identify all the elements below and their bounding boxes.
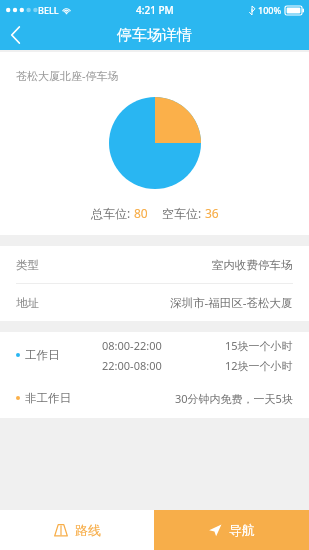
staticText: 苍松大厦北座-停车场: [16, 68, 119, 83]
staticText: 4:21 PM: [136, 3, 174, 17]
staticText: 08:00-22:00: [102, 338, 162, 353]
staticText: 总车位:: [91, 205, 134, 221]
staticText: 非工作日: [25, 391, 71, 405]
staticText: 停车场详情: [117, 26, 192, 45]
staticText: 室内收费停车场: [212, 258, 293, 272]
staticText: 100%: [258, 4, 282, 16]
staticText: 导航: [229, 522, 255, 538]
staticText: 深圳市-福田区-苍松大厦: [170, 295, 293, 311]
button[interactable]: 导航: [154, 510, 309, 550]
staticText: 工作日: [25, 348, 60, 362]
button[interactable]: Back: [0, 20, 30, 50]
staticText: BELL: [38, 4, 59, 16]
staticText: 15块一个小时: [225, 338, 293, 353]
staticText: 30分钟内免费，一天5块: [175, 391, 293, 406]
staticText: 空车位:: [162, 205, 205, 221]
staticText: 22:00-08:00: [102, 358, 162, 373]
staticText: 类型: [16, 258, 39, 272]
staticText: 80: [134, 205, 148, 221]
staticText: 12块一个小时: [225, 358, 293, 373]
button[interactable]: 地址: [0, 284, 309, 321]
staticText: 36: [205, 205, 219, 221]
button[interactable]: 类型: [0, 246, 309, 283]
staticText: 地址: [16, 296, 39, 310]
staticText: 路线: [75, 522, 101, 538]
button[interactable]: 路线: [0, 510, 154, 550]
